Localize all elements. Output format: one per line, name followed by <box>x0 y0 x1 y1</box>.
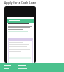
button[interactable]: Apply for a Cash Loan <box>4 1 37 5</box>
staticText: Apply for a Cash Loan <box>4 1 37 5</box>
